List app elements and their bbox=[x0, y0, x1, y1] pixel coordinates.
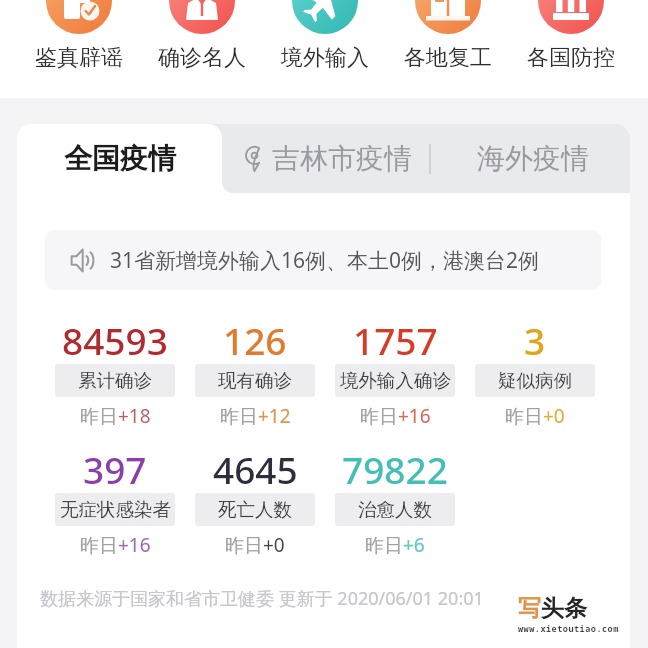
button[interactable]: 各地复工 bbox=[386, 0, 509, 72]
staticText: 31省新增境外输入16例、本土0例，港澳台2例 bbox=[110, 246, 540, 275]
staticText: 全国疫情 bbox=[64, 141, 176, 176]
other: 境外输入 bbox=[292, 0, 358, 36]
button[interactable]: 公告 bbox=[45, 230, 601, 290]
staticText: 鉴真辟谣 bbox=[35, 44, 123, 72]
button[interactable]: 鉴真辟谣 bbox=[17, 0, 140, 72]
staticText: 数据来源于国家和省市卫健委 更新于 2020/06/01 20:01 bbox=[40, 586, 484, 611]
staticText: 疑似病例 bbox=[498, 369, 572, 392]
staticText: 各国防控 bbox=[527, 44, 615, 72]
other: 鉴真辟谣 bbox=[46, 0, 112, 36]
staticText: 境外输入 bbox=[281, 44, 369, 72]
staticText: 3 bbox=[524, 315, 546, 365]
staticText: 现有确诊 bbox=[218, 369, 292, 392]
staticText: 1757 bbox=[353, 315, 438, 365]
other: 确诊名人 bbox=[169, 0, 235, 36]
other: 各国防控 bbox=[538, 0, 604, 36]
button[interactable]: 海外疫情 bbox=[431, 141, 627, 176]
staticText: 397 bbox=[83, 444, 147, 494]
button[interactable]: 各国防控 bbox=[509, 0, 632, 72]
button[interactable]: 79822 bbox=[325, 444, 465, 553]
staticText: 确诊名人 bbox=[158, 44, 246, 72]
button[interactable]: 全国疫情 bbox=[17, 124, 222, 193]
staticText: www.xietoutiao.com bbox=[518, 623, 619, 635]
staticText: 126 bbox=[223, 315, 287, 365]
other: 各地复工 bbox=[415, 0, 481, 36]
button[interactable]: 397 bbox=[45, 444, 185, 553]
staticText: 昨日+0 bbox=[505, 403, 565, 429]
button[interactable]: 境外输入 bbox=[263, 0, 386, 72]
other: 公告 bbox=[70, 248, 97, 273]
staticText: 4645 bbox=[213, 444, 298, 494]
staticText: 79822 bbox=[342, 444, 448, 494]
staticText: 境外输入确诊 bbox=[340, 369, 451, 392]
staticText: 累计确诊 bbox=[78, 369, 152, 392]
staticText: 昨日+6 bbox=[365, 532, 425, 558]
button[interactable]: 3 bbox=[465, 315, 605, 424]
button[interactable]: 吉林市疫情 bbox=[222, 141, 429, 176]
staticText: 昨日+12 bbox=[220, 403, 291, 429]
staticText: 昨日+18 bbox=[80, 403, 151, 429]
staticText: 昨日+16 bbox=[80, 532, 151, 558]
staticText: 头条 bbox=[541, 594, 587, 623]
staticText: 84593 bbox=[62, 315, 168, 365]
button[interactable]: 1757 bbox=[325, 315, 465, 424]
button[interactable]: 确诊名人 bbox=[140, 0, 263, 72]
staticText: 死亡人数 bbox=[218, 498, 292, 521]
button[interactable]: 4645 bbox=[185, 444, 325, 553]
staticText: 吉林市疫情 bbox=[272, 141, 412, 176]
staticText: 各地复工 bbox=[404, 44, 492, 72]
staticText: 昨日+0 bbox=[225, 532, 285, 558]
button[interactable]: 126 bbox=[185, 315, 325, 424]
staticText: 昨日+16 bbox=[360, 403, 431, 429]
staticText: 治愈人数 bbox=[358, 498, 432, 521]
button[interactable]: 84593 bbox=[45, 315, 185, 424]
staticText: 无症状感染者 bbox=[60, 498, 171, 521]
staticText: 写 bbox=[518, 594, 541, 623]
staticText: 海外疫情 bbox=[477, 141, 589, 176]
